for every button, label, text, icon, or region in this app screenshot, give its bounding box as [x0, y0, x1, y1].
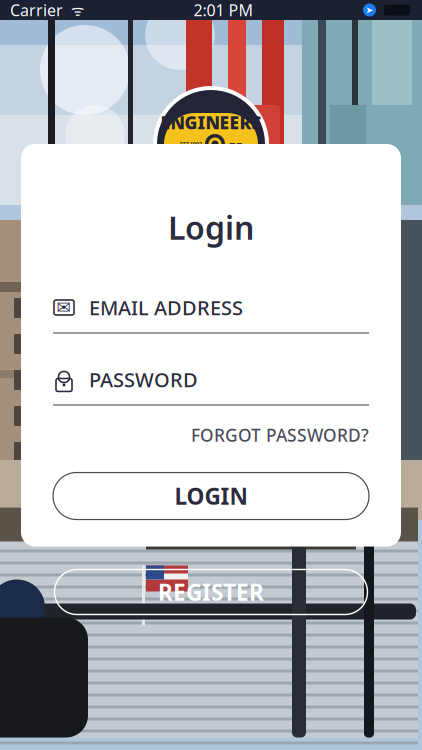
staticText: REGISTER	[158, 577, 264, 607]
staticText: ✉	[56, 298, 71, 317]
staticText: ᯤ	[63, 0, 84, 20]
staticText: EST 1902	[180, 140, 202, 148]
staticText: ENGINEERS	[160, 111, 261, 134]
staticText: ➤	[365, 5, 373, 15]
button[interactable]: LOGIN	[53, 472, 369, 519]
staticText: Carrier	[10, 0, 63, 21]
staticText: 2:01 PM	[193, 0, 253, 21]
staticText: EMAIL ADDRESS	[89, 294, 243, 321]
button[interactable]: FORGOT PASSWORD?	[191, 419, 369, 450]
button[interactable]: REGISTER	[54, 569, 367, 614]
staticText: Login	[168, 206, 254, 248]
staticText: ▰▰	[228, 139, 242, 149]
staticText: LOGIN	[174, 481, 247, 511]
staticText: PASSWORD	[89, 366, 198, 393]
staticText: FORGOT PASSWORD?	[191, 423, 369, 446]
